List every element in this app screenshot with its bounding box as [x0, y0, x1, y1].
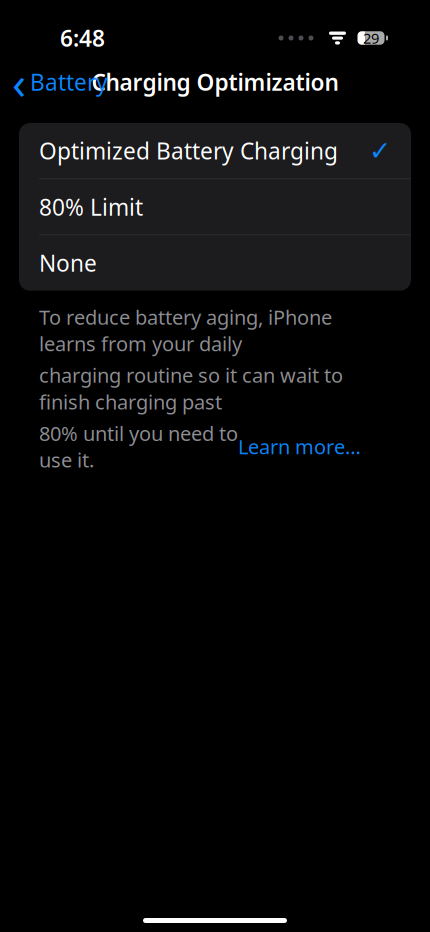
- staticText: 80% Limit: [39, 192, 143, 222]
- button[interactable]: ‹: [6, 44, 114, 120]
- staticText: None: [39, 248, 97, 278]
- staticText: charging routine so it can wait to finis…: [39, 362, 343, 415]
- staticText: To reduce battery aging, iPhone learns f…: [39, 304, 332, 357]
- button[interactable]: Learn more…: [238, 433, 361, 460]
- staticText: 80% until you need to use it.: [39, 420, 238, 473]
- staticText: ‹: [12, 52, 26, 112]
- staticText: ✓: [369, 136, 391, 166]
- staticText: Optimized Battery Charging: [39, 136, 338, 166]
- button[interactable]: 80% Limit: [19, 179, 411, 235]
- button[interactable]: Optimized Battery Charging: [19, 123, 411, 178]
- button[interactable]: None: [19, 235, 411, 291]
- staticText: Charging Optimization: [91, 67, 338, 97]
- staticText: Battery: [30, 67, 108, 97]
- staticText: Learn more…: [238, 433, 361, 460]
- staticText: 6:48: [60, 23, 105, 53]
- staticText: 29: [363, 28, 379, 48]
